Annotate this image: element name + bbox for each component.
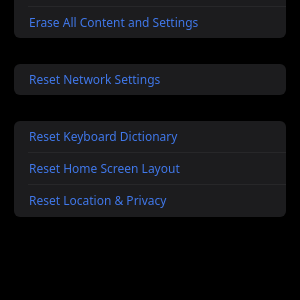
- button[interactable]: Reset Keyboard Dictionary: [14, 121, 286, 152]
- button[interactable]: Erase All Content and Settings: [14, 7, 286, 38]
- button[interactable]: Reset Network Settings: [14, 64, 286, 95]
- button[interactable]: Reset Location & Privacy: [14, 185, 286, 217]
- staticText: Erase All Content and Settings: [29, 14, 199, 30]
- staticText: Reset Keyboard Dictionary: [29, 128, 178, 144]
- button[interactable]: Reset Home Screen Layout: [14, 153, 286, 184]
- staticText: Reset Location & Privacy: [29, 192, 167, 208]
- staticText: Reset Home Screen Layout: [29, 160, 180, 176]
- staticText: Reset Network Settings: [29, 71, 161, 87]
